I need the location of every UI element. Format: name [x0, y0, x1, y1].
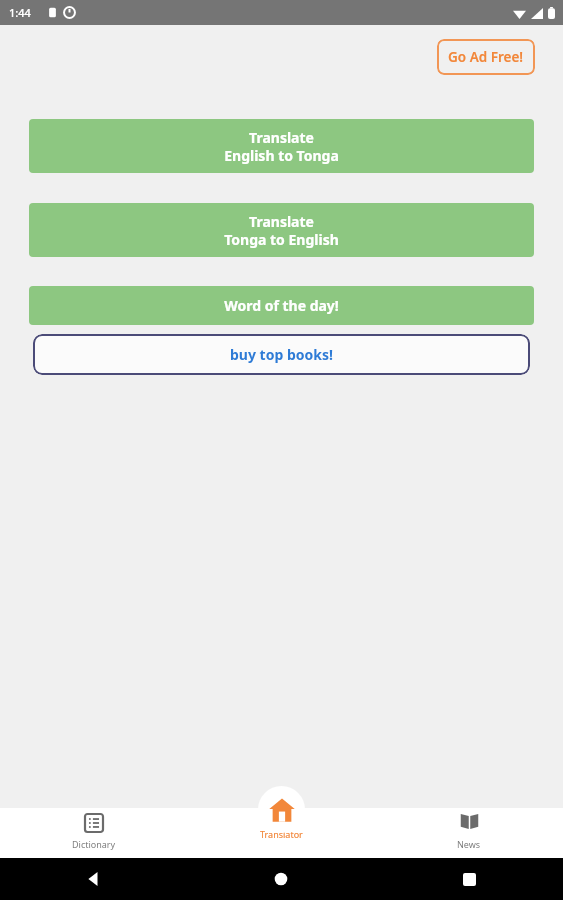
staticText: News [457, 838, 481, 850]
staticText: Word of the day! [224, 296, 339, 315]
staticText: Translate English to Tonga [224, 128, 339, 165]
button[interactable]: Translate Tonga to English [29, 203, 534, 257]
button[interactable]: buy top books! [33, 334, 530, 375]
other: Home [274, 872, 288, 886]
staticText: 1:44 [9, 5, 31, 20]
other: Recents [463, 873, 476, 886]
button[interactable]: Word of the day! [29, 286, 534, 325]
staticText: buy top books! [230, 345, 333, 364]
staticText: Translate Tonga to English [224, 212, 339, 249]
button[interactable]: News [375, 808, 563, 858]
button[interactable]: Go Ad Free! [437, 39, 535, 75]
staticText: Translator [260, 828, 303, 840]
button[interactable]: Dictionary [0, 808, 187, 858]
staticText: Go Ad Free! [448, 48, 524, 66]
button[interactable]: Translator [187, 826, 375, 840]
button[interactable]: Translate English to Tonga [29, 119, 534, 173]
other: Back [87, 872, 101, 886]
staticText: Dictionary [72, 838, 116, 850]
